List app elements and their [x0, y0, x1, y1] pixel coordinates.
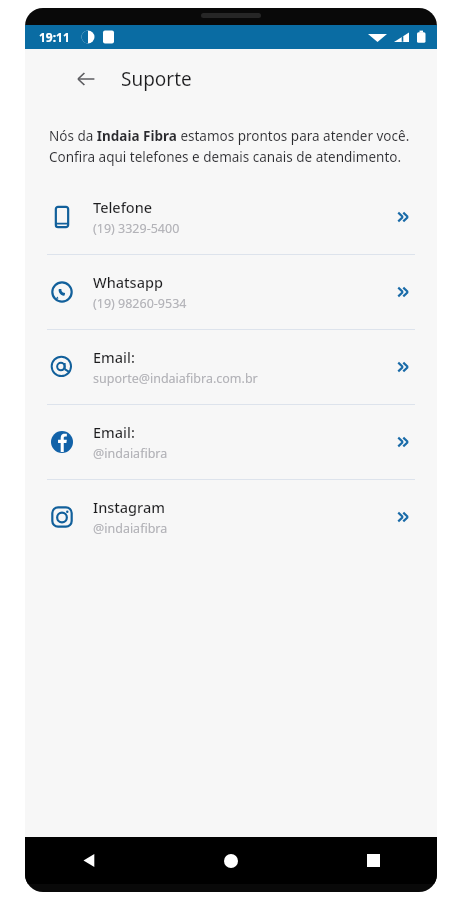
staticText: Email:	[93, 422, 135, 442]
staticText: Email:	[93, 347, 135, 367]
button[interactable]: Email:	[25, 405, 437, 479]
staticText: Telefone	[93, 197, 153, 217]
staticText: Instagram	[93, 497, 165, 517]
staticText: 19:11	[39, 29, 70, 45]
button[interactable]: Email:	[25, 330, 437, 404]
staticText: (19) 3329-5400	[93, 220, 180, 237]
button[interactable]: Recent apps	[349, 837, 397, 884]
button[interactable]: Home	[207, 837, 255, 884]
button[interactable]: Back	[65, 837, 113, 884]
staticText: (19) 98260-9534	[93, 295, 187, 312]
staticText: Whatsapp	[93, 272, 163, 292]
staticText: @indaiafibra	[93, 520, 168, 537]
staticText: Suporte	[121, 66, 192, 92]
button[interactable]: Whatsapp	[25, 255, 437, 329]
staticText: Nós da Indaia Fibra estamos prontos para…	[49, 127, 411, 166]
button[interactable]: Telefone	[25, 180, 437, 254]
staticText: suporte@indaiafibra.com.br	[93, 370, 258, 387]
button[interactable]: Instagram	[25, 480, 437, 554]
button[interactable]: Back	[69, 62, 103, 96]
staticText: @indaiafibra	[93, 445, 168, 462]
